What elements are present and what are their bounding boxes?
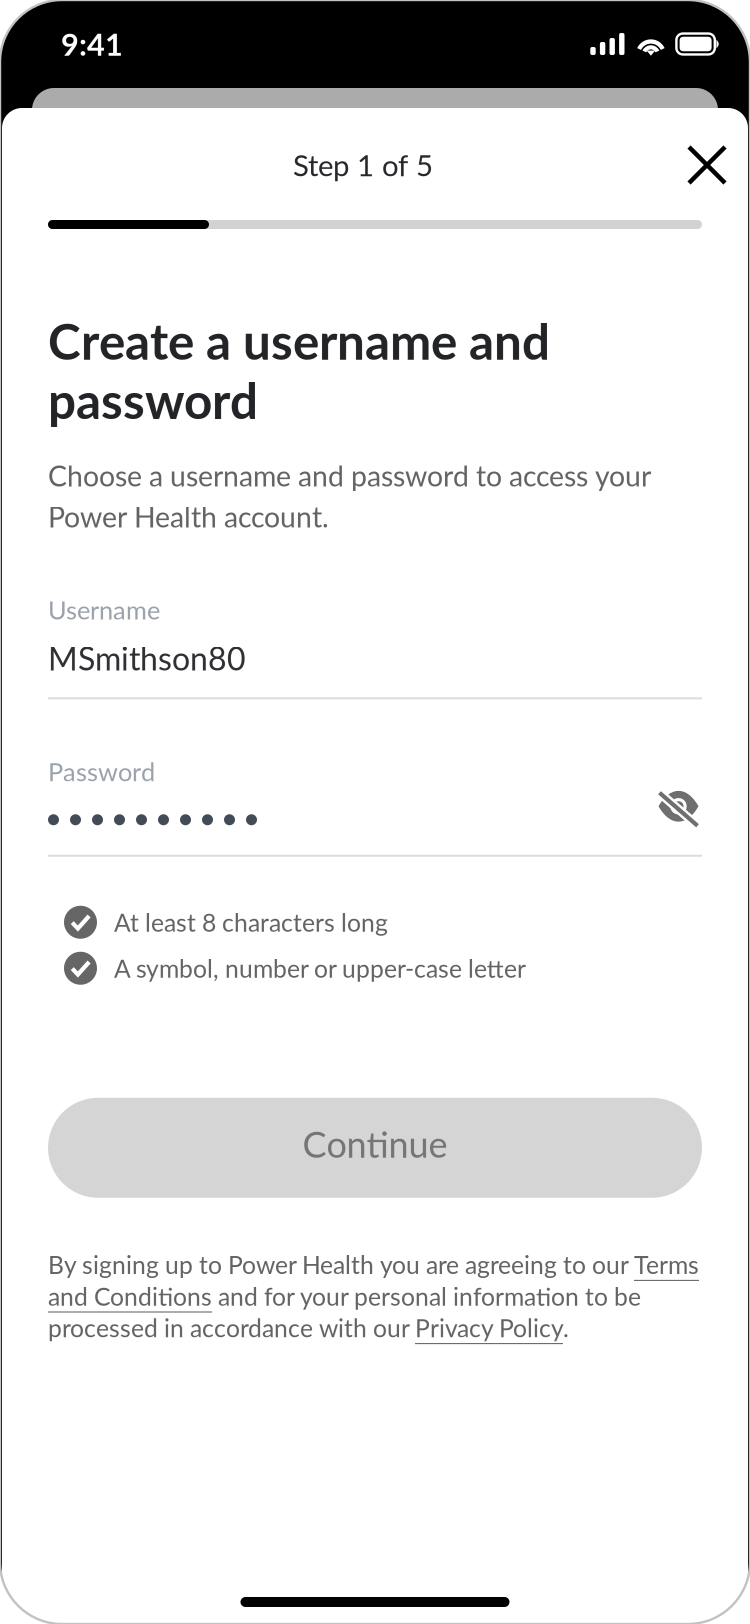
staticText: Username — [48, 595, 160, 625]
staticText: 9:41 — [61, 26, 123, 62]
staticText: Create a username and password — [48, 311, 550, 429]
staticText: Password — [48, 756, 155, 787]
staticText: Choose a username and password to access… — [48, 458, 651, 534]
button[interactable]: Close — [678, 136, 736, 194]
button[interactable]: Continue — [48, 1098, 702, 1198]
staticText: By signing up to Power Health you are ag… — [48, 1250, 699, 1343]
staticText: At least 8 characters long — [114, 907, 388, 937]
staticText: Step 1 of 5 — [293, 147, 433, 183]
staticText: A symbol, number or upper-case letter — [114, 953, 526, 983]
staticText: Continue — [302, 1122, 447, 1165]
button[interactable]: Show password — [650, 797, 702, 843]
staticText: MSmithson80 — [48, 639, 246, 677]
